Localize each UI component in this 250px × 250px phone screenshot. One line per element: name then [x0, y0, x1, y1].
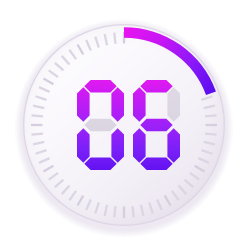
button[interactable]: Timer watch face, 6 minutes remaining	[0, 0, 250, 250]
